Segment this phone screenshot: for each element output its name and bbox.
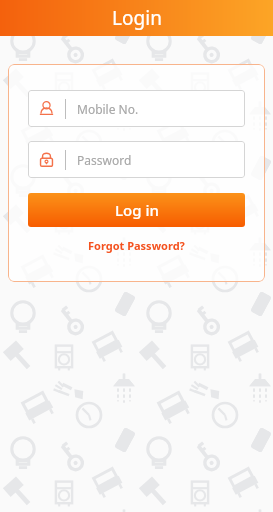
other: Mobile number icon	[28, 90, 65, 127]
button[interactable]: Log in	[28, 193, 245, 227]
button[interactable]: Forgot Password?	[82, 235, 191, 256]
staticText: Mobile No.	[77, 101, 139, 117]
other: Password icon	[28, 141, 65, 178]
staticText: Log in	[115, 200, 159, 220]
button[interactable]: Mobile number icon	[28, 90, 245, 127]
staticText: Password	[77, 152, 132, 168]
staticText: Forgot Password?	[88, 238, 185, 253]
button[interactable]: Password icon	[28, 141, 245, 178]
staticText: Login	[112, 5, 162, 31]
